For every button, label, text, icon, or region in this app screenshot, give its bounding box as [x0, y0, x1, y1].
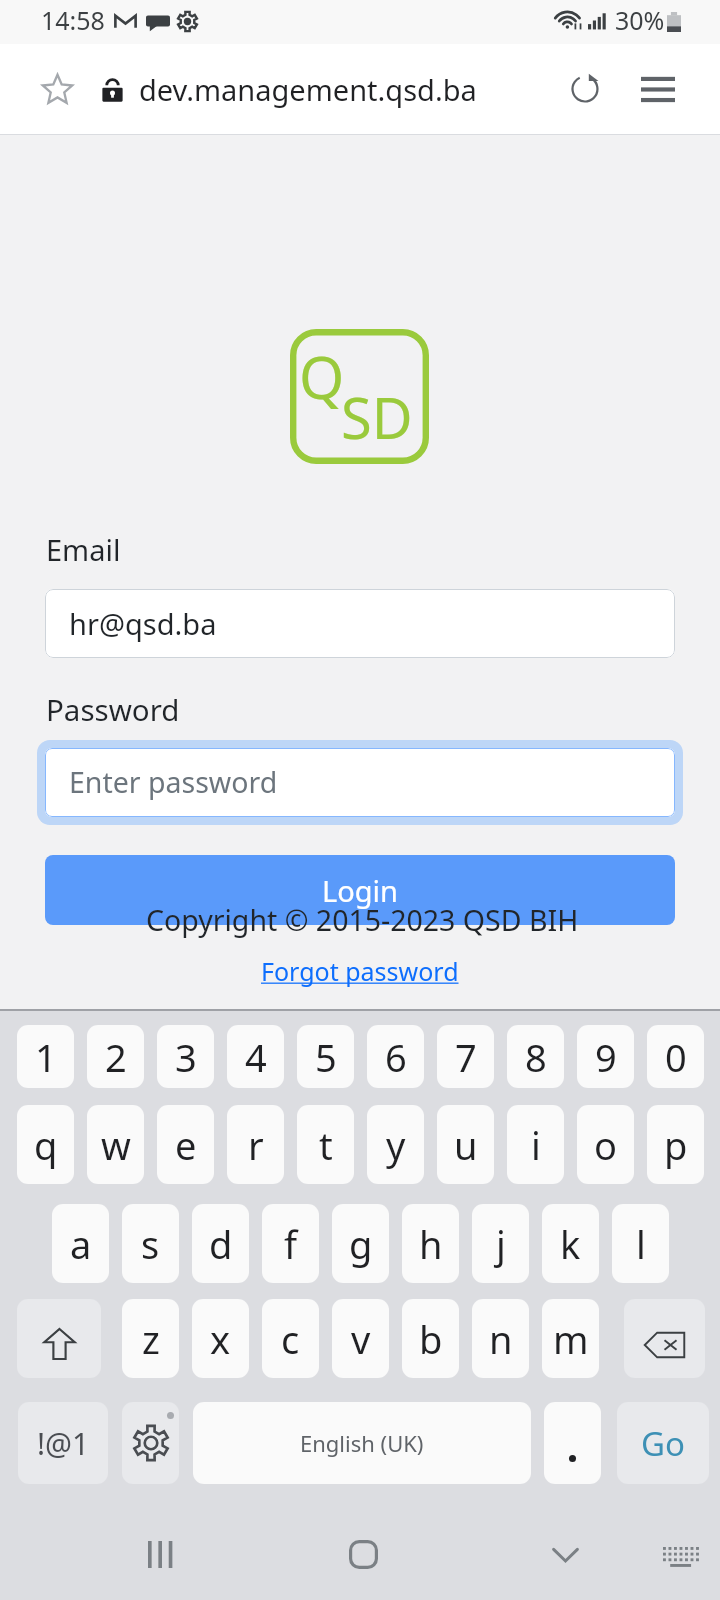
staticText: k — [560, 1218, 581, 1270]
staticText: Enter password — [69, 763, 278, 802]
button[interactable]: s — [122, 1204, 179, 1283]
staticText: hr@qsd.ba — [69, 604, 217, 643]
button[interactable]: r — [227, 1105, 284, 1184]
button[interactable]: x — [192, 1299, 249, 1378]
button[interactable]: p — [647, 1105, 704, 1184]
button[interactable]: 8 — [507, 1025, 564, 1088]
staticText: Login — [322, 871, 398, 910]
button[interactable]: h — [402, 1204, 459, 1283]
staticText: g — [349, 1218, 373, 1270]
button[interactable]: 2 — [87, 1025, 144, 1088]
staticText: 8 — [525, 1031, 547, 1083]
staticText: 0 — [665, 1031, 687, 1083]
staticText: r — [248, 1119, 264, 1171]
button[interactable]: Enter password — [45, 748, 675, 817]
staticText: l — [636, 1218, 646, 1270]
staticText: f — [284, 1218, 298, 1270]
staticText: z — [142, 1313, 160, 1365]
button[interactable]: y — [367, 1105, 424, 1184]
staticText: x — [210, 1313, 231, 1365]
button[interactable]: z — [122, 1299, 179, 1378]
button[interactable]: Forgot password — [261, 954, 459, 988]
button[interactable]: u — [437, 1105, 494, 1184]
staticText: a — [70, 1218, 92, 1270]
staticText: dev.management.qsd.ba — [139, 70, 477, 109]
button[interactable]: Hide keyboard — [505, 1518, 625, 1592]
staticText: u — [454, 1119, 478, 1171]
staticText: SD — [341, 379, 413, 455]
button[interactable]: q — [17, 1105, 74, 1184]
staticText: Forgot password — [261, 954, 459, 988]
staticText: 3 — [175, 1031, 197, 1083]
button[interactable]: Menu — [626, 57, 690, 121]
button[interactable]: Backspace — [624, 1299, 705, 1378]
staticText: 1 — [35, 1031, 57, 1083]
button[interactable]: l — [612, 1204, 669, 1283]
staticText: Email — [46, 530, 121, 569]
button[interactable]: Shift — [17, 1299, 101, 1378]
button[interactable]: j — [472, 1204, 529, 1283]
staticText: j — [496, 1218, 506, 1270]
staticText: t — [319, 1119, 333, 1171]
button[interactable]: Home — [303, 1517, 423, 1591]
staticText: Q — [299, 337, 345, 416]
staticText: 9 — [595, 1031, 617, 1083]
button[interactable]: !@1 — [18, 1402, 108, 1484]
staticText: 6 — [385, 1031, 407, 1083]
staticText: c — [281, 1313, 300, 1365]
button[interactable]: hr@qsd.ba — [45, 589, 675, 658]
staticText: y — [386, 1119, 406, 1171]
staticText: 7 — [455, 1031, 477, 1083]
button[interactable]: v — [332, 1299, 389, 1378]
button[interactable]: English (UK) — [193, 1402, 531, 1484]
button[interactable]: 7 — [437, 1025, 494, 1088]
button[interactable] — [544, 1402, 601, 1484]
button[interactable]: 5 — [297, 1025, 354, 1088]
staticText: b — [419, 1313, 443, 1365]
staticText: w — [101, 1119, 131, 1171]
staticText: 30% — [615, 3, 665, 37]
button[interactable]: i — [507, 1105, 564, 1184]
button[interactable]: e — [157, 1105, 214, 1184]
staticText: Go — [641, 1421, 685, 1466]
staticText: !@1 — [37, 1423, 90, 1464]
staticText: i — [531, 1119, 541, 1171]
button[interactable]: g — [332, 1204, 389, 1283]
staticText: h — [419, 1218, 443, 1270]
button[interactable]: Recents — [102, 1517, 222, 1591]
button[interactable]: Go — [617, 1402, 709, 1484]
button[interactable]: m — [542, 1299, 599, 1378]
button[interactable]: a — [52, 1204, 109, 1283]
button[interactable]: dev.management.qsd.ba — [139, 70, 477, 109]
button[interactable]: k — [542, 1204, 599, 1283]
staticText: e — [175, 1119, 197, 1171]
button[interactable]: o — [577, 1105, 634, 1184]
staticText: n — [489, 1313, 513, 1365]
staticText: m — [553, 1313, 589, 1365]
button[interactable]: Login — [45, 855, 675, 925]
button[interactable]: t — [297, 1105, 354, 1184]
button[interactable]: 3 — [157, 1025, 214, 1088]
button[interactable]: b — [402, 1299, 459, 1378]
staticText: Password — [46, 689, 180, 729]
button[interactable]: Bookmark — [20, 57, 94, 121]
staticText: s — [141, 1218, 160, 1270]
staticText: q — [34, 1119, 58, 1171]
button[interactable]: w — [87, 1105, 144, 1184]
staticText: 4 — [245, 1031, 267, 1083]
button[interactable]: d — [192, 1204, 249, 1283]
button[interactable]: Reload — [553, 57, 617, 121]
staticText: v — [351, 1313, 371, 1365]
button[interactable]: f — [262, 1204, 319, 1283]
staticText: Copyright © 2015-2023 QSD BIH — [146, 901, 579, 940]
button[interactable]: 1 — [17, 1025, 74, 1088]
button[interactable]: 0 — [647, 1025, 704, 1088]
button[interactable]: 4 — [227, 1025, 284, 1088]
button[interactable]: 9 — [577, 1025, 634, 1088]
button[interactable]: Switch keyboard — [641, 1520, 720, 1594]
button[interactable]: n — [472, 1299, 529, 1378]
button[interactable]: Keyboard settings — [122, 1402, 179, 1484]
staticText: p — [664, 1119, 688, 1171]
button[interactable]: 6 — [367, 1025, 424, 1088]
button[interactable]: c — [262, 1299, 319, 1378]
